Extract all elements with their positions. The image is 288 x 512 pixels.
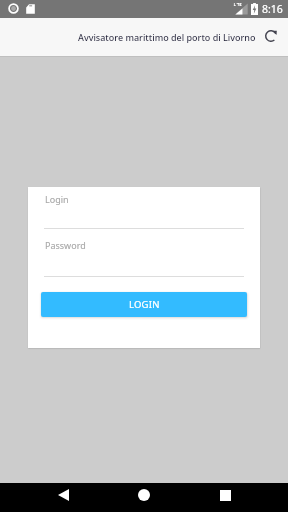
button[interactable]: Recents — [207, 483, 243, 507]
staticText: LOGIN — [129, 298, 160, 311]
button[interactable]: Back — [45, 483, 81, 507]
button[interactable]: Home — [125, 483, 162, 507]
staticText: 8:16 — [262, 2, 283, 16]
staticText: Avvisatore marittimo del porto di Livorn… — [78, 31, 256, 43]
button[interactable]: Password — [44, 237, 244, 277]
button[interactable]: Login — [44, 191, 244, 229]
button[interactable]: LOGIN — [41, 292, 247, 317]
staticText: Password — [45, 239, 86, 251]
button[interactable]: Refresh — [259, 24, 283, 48]
staticText: Login — [45, 193, 69, 205]
